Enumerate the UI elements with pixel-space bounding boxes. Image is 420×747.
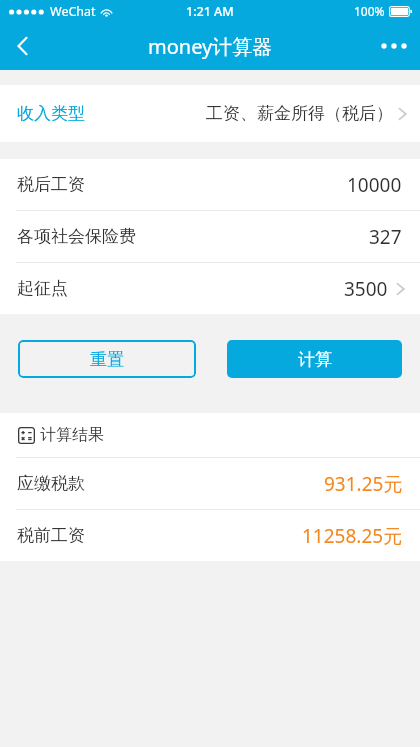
button[interactable]: 各项社会保险费 [0,211,420,262]
staticText: 3500 [344,276,388,302]
staticText: 327 [369,224,402,250]
staticText: 税后工资 [17,174,85,195]
staticText: 931.25元 [324,471,403,497]
staticText: 11258.25元 [302,523,403,549]
staticText: 计算结果 [40,425,104,445]
staticText: 100% [354,3,385,19]
button[interactable]: 重置 [18,340,196,378]
staticText: 各项社会保险费 [17,226,136,247]
staticText: 1:21 AM [186,3,234,20]
staticText: 起征点 [17,278,68,299]
button[interactable]: 税前工资 [0,510,420,561]
staticText: money计算器 [148,33,273,60]
staticText: 应缴税款 [17,473,85,494]
staticText: WeChat [50,3,96,20]
staticText: 计算 [298,349,332,370]
button[interactable]: 应缴税款 [0,458,420,509]
button[interactable]: 收入类型 [0,85,420,142]
button[interactable]: Back [0,22,46,70]
staticText: 税前工资 [17,525,85,546]
staticText: 工资、薪金所得（税后） [206,103,393,124]
staticText: 收入类型 [17,103,85,124]
staticText: 重置 [90,349,124,370]
button[interactable]: 起征点 [0,263,420,314]
button[interactable]: 计算 [227,340,402,378]
button[interactable]: More options [368,22,420,70]
staticText: 10000 [347,172,402,198]
button[interactable]: 税后工资 [0,159,420,210]
